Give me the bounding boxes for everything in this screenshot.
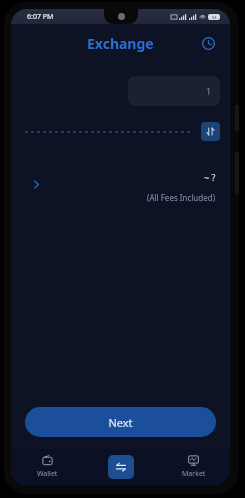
staticText: ~ ? [204,171,216,183]
button[interactable]: History [196,31,220,55]
staticText: Market [182,469,206,479]
button[interactable]: 1 [128,76,220,106]
button[interactable]: Market [157,449,230,485]
button[interactable]: Next [25,407,216,437]
button[interactable]: Exchange [108,455,134,479]
staticText: (All Fees Included) [147,192,216,203]
staticText: 94 [212,15,217,20]
button[interactable]: Swap currencies [201,122,220,141]
button[interactable]: Wallet [11,449,84,485]
button[interactable]: Select currency [25,173,47,195]
staticText: 6:07 PM [27,12,54,22]
staticText: Exchange [87,34,154,53]
staticText: Wallet [37,469,58,479]
staticText: Next [108,415,133,430]
staticText: 1 [206,85,212,97]
